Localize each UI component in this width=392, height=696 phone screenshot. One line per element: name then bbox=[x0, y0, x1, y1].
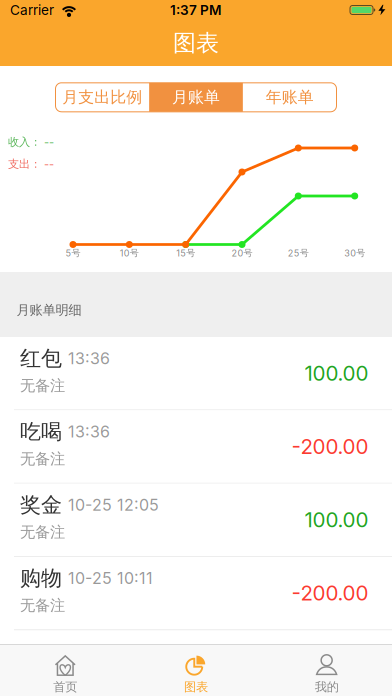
button[interactable]: 购物 bbox=[0, 557, 392, 630]
button[interactable]: 图表 bbox=[131, 645, 261, 696]
staticText: 5号 bbox=[65, 247, 80, 259]
staticText: 100.00 bbox=[304, 361, 368, 386]
staticText: 红包 bbox=[20, 345, 62, 372]
staticText: -200.00 bbox=[291, 434, 368, 459]
button[interactable]: 吃喝 bbox=[0, 410, 392, 484]
staticText: 月账单 bbox=[172, 87, 220, 107]
staticText: 15号 bbox=[176, 247, 195, 259]
staticText: 月支出比例 bbox=[62, 87, 142, 107]
staticText: 吃喝 bbox=[20, 418, 62, 445]
button[interactable]: 我的 bbox=[261, 645, 392, 696]
staticText: 图表 bbox=[184, 679, 208, 695]
staticText: 奖金 bbox=[20, 492, 62, 518]
staticText: 20号 bbox=[231, 247, 252, 259]
staticText: 我的 bbox=[315, 679, 339, 695]
staticText: 1:37 PM bbox=[170, 2, 222, 18]
staticText: 月账单明细 bbox=[16, 302, 81, 318]
staticText: 无备注 bbox=[20, 376, 65, 395]
staticText: 10号 bbox=[120, 247, 139, 259]
staticText: 25号 bbox=[288, 247, 309, 259]
button[interactable]: 月账单 bbox=[149, 83, 243, 112]
staticText: 13:36 bbox=[68, 422, 110, 441]
staticText: 图表 bbox=[173, 28, 219, 57]
staticText: 无备注 bbox=[20, 523, 65, 542]
staticText: 13:36 bbox=[68, 349, 110, 368]
staticText: 收入： -- bbox=[8, 135, 54, 149]
button[interactable]: 首页 bbox=[0, 645, 131, 696]
button[interactable]: 年账单 bbox=[243, 83, 336, 112]
staticText: 支出： -- bbox=[8, 157, 54, 171]
staticText: 首页 bbox=[53, 679, 77, 695]
staticText: 无备注 bbox=[20, 596, 65, 615]
staticText: 100.00 bbox=[304, 507, 368, 532]
button[interactable]: 奖金 bbox=[0, 484, 392, 557]
staticText: 30号 bbox=[344, 247, 365, 259]
staticText: 无备注 bbox=[20, 449, 65, 468]
staticText: 购物 bbox=[20, 565, 62, 592]
staticText: 10-25 12:05 bbox=[68, 495, 159, 515]
button[interactable]: 红包 bbox=[0, 337, 392, 410]
button[interactable]: 月支出比例 bbox=[55, 83, 149, 112]
staticText: 年账单 bbox=[266, 87, 314, 107]
staticText: -200.00 bbox=[291, 581, 368, 605]
staticText: 10-25 10:11 bbox=[68, 569, 153, 588]
staticText: Carrier bbox=[10, 2, 54, 18]
